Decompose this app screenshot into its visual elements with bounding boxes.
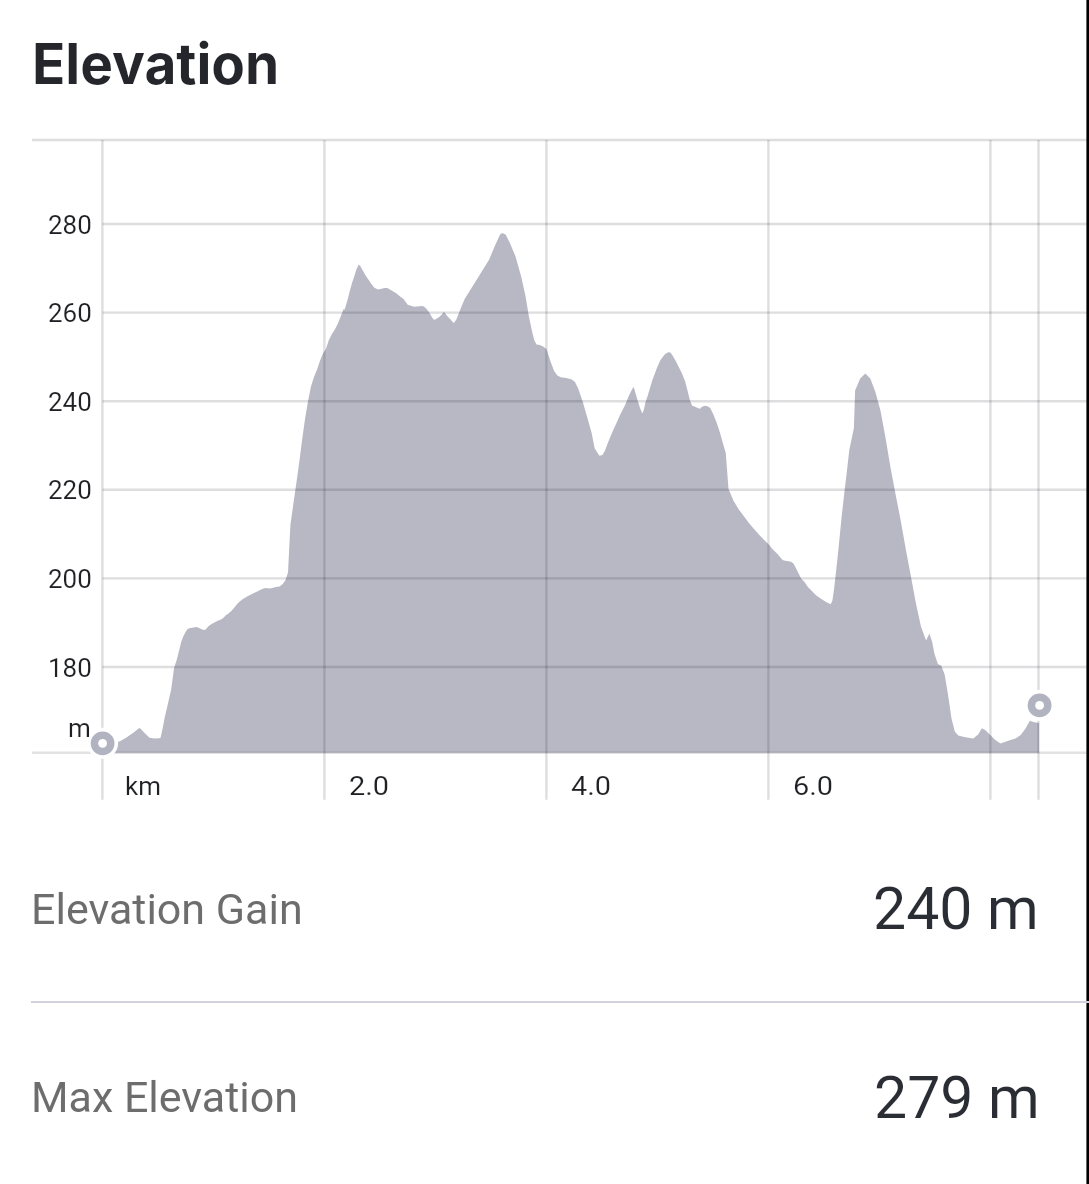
- staticText: 180: [48, 653, 92, 683]
- staticText: 240: [48, 387, 92, 417]
- staticText: 6.0: [793, 771, 834, 801]
- staticText: Elevation Gain: [31, 884, 303, 934]
- button[interactable]: Elevation Gain: [0, 848, 1089, 1002]
- staticText: m: [68, 713, 91, 743]
- staticText: 4.0: [571, 771, 612, 801]
- staticText: 279 m: [874, 1063, 1040, 1132]
- staticText: Elevation: [32, 30, 279, 98]
- staticText: km: [125, 771, 161, 801]
- staticText: 260: [48, 298, 92, 328]
- staticText: 240 m: [873, 874, 1039, 943]
- staticText: 200: [48, 564, 92, 594]
- staticText: 220: [48, 475, 92, 505]
- button[interactable]: Max Elevation: [0, 1002, 1089, 1156]
- staticText: Max Elevation: [31, 1072, 299, 1122]
- staticText: 280: [48, 210, 92, 240]
- staticText: 2.0: [349, 771, 390, 801]
